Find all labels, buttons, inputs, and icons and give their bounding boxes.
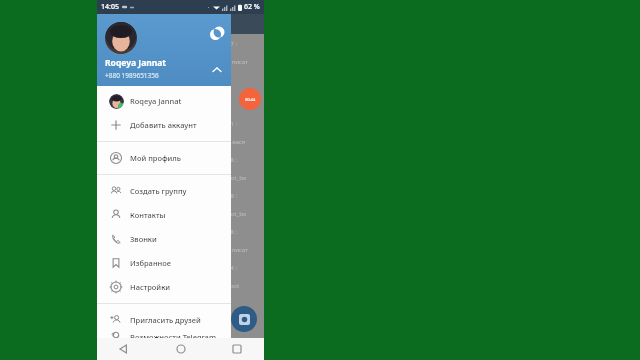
staticText: bot_bo [227,210,247,218]
button[interactable]: Возможности Telegram [97,332,231,338]
staticText: bot_bo [227,174,247,182]
staticText: Пригласить друзей [130,315,201,325]
staticText: Мой профиль [130,153,182,163]
staticText: 04 : [227,264,238,272]
button[interactable]: Home [172,340,190,358]
staticText: 62 % [244,2,260,12]
button[interactable]: Recents [228,340,246,358]
button[interactable]: Expand accounts [209,62,225,78]
staticText: Настройки [130,282,171,292]
staticText: _bot [227,282,240,290]
staticText: 14:05 [101,2,119,12]
staticText: у писат [227,58,249,66]
button[interactable]: Night mode [207,26,223,42]
button[interactable]: Настройки [97,275,231,299]
button[interactable]: Roqeya Jannat [97,89,231,113]
staticText: b вася [227,138,246,146]
button[interactable]: Создать группу [97,179,231,203]
button[interactable]: Night mode [97,14,231,86]
button[interactable]: Back [115,340,133,358]
staticText: 27 : [227,40,238,48]
staticText: 00:44 [245,97,256,102]
staticText: 18 : [227,192,238,200]
staticText: 18 : [227,156,238,164]
staticText: 18 : [227,228,238,236]
staticText: Звонки [130,234,157,244]
staticText: у писат [227,246,249,254]
button[interactable]: Контакты [97,203,231,227]
button[interactable]: Мой профиль [97,146,231,170]
button[interactable]: Звонки [97,227,231,251]
staticText: Возможности Telegram [130,332,217,338]
staticText: Roqeya Jannat [105,57,167,69]
button[interactable]: Пригласить друзей [97,308,231,332]
button[interactable]: Избранное [97,251,231,275]
button[interactable]: Добавить аккаунт [97,113,231,137]
staticText: 31 : [227,120,238,128]
staticText: Добавить аккаунт [130,120,197,130]
staticText: +880 1989651356 [105,71,159,80]
staticText: Контакты [130,210,166,220]
staticText: Roqeya Jannat [130,96,182,106]
staticText: Создать группу [130,186,187,196]
staticText: Избранное [130,258,171,268]
